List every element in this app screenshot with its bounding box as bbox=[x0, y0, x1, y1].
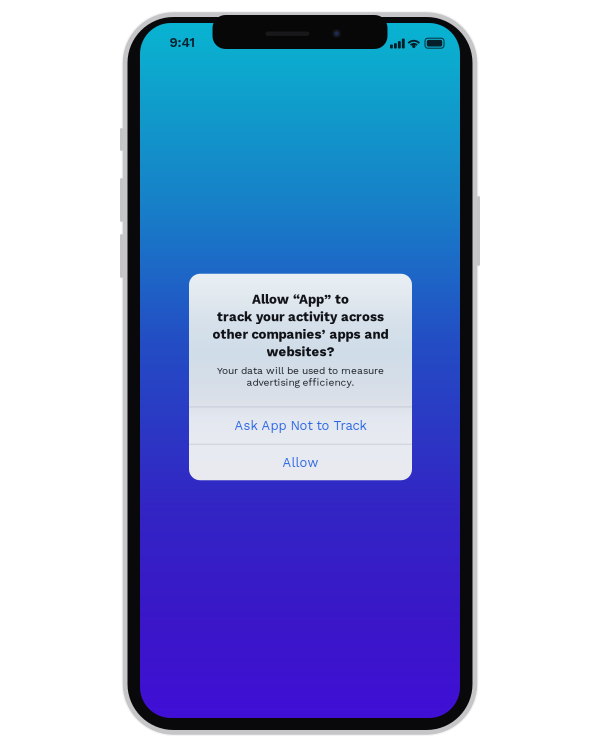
button[interactable]: Allow bbox=[189, 445, 412, 481]
staticText: advertising efficiency. bbox=[246, 376, 354, 388]
staticText: other companies’ apps and bbox=[212, 326, 388, 342]
staticText: Ask App Not to Track bbox=[234, 418, 366, 433]
staticText: Allow bbox=[282, 455, 318, 470]
staticText: websites? bbox=[266, 344, 334, 359]
staticText: track your activity across bbox=[217, 309, 384, 324]
staticText: 9:41 bbox=[169, 34, 195, 50]
button[interactable]: Ask App Not to Track bbox=[189, 407, 412, 444]
staticText: Allow “App” to bbox=[252, 291, 349, 307]
staticText: Your data will be used to measure bbox=[217, 364, 384, 376]
